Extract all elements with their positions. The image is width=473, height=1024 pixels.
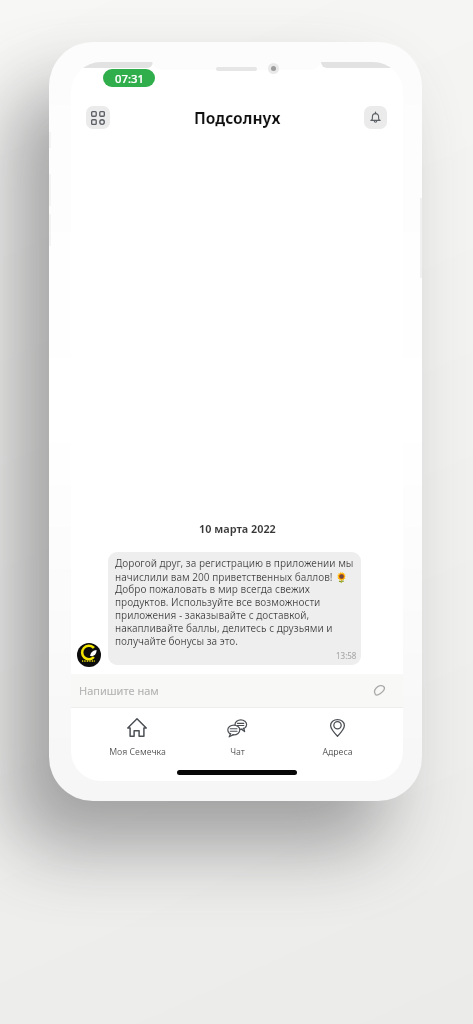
button[interactable]: Уведомления	[364, 106, 387, 129]
staticText: Подсолнух	[194, 107, 281, 128]
button[interactable]: Каталог	[86, 106, 110, 129]
staticText: 10 марта 2022	[199, 521, 276, 536]
button[interactable]: Чат	[187, 712, 287, 758]
staticText: Адреса	[322, 746, 353, 758]
button[interactable]: Прикрепить файл	[369, 681, 389, 701]
staticText: Моя Семечка	[109, 746, 166, 758]
button[interactable]: Напишите нам	[71, 674, 403, 707]
staticText: Напишите нам	[79, 683, 159, 698]
button[interactable]: Семечка	[77, 643, 101, 667]
staticText: Дорогой друг, за регистрацию в приложени…	[115, 556, 357, 648]
button[interactable]: Моя Семечка	[87, 712, 187, 758]
staticText: Чат	[230, 746, 245, 758]
staticText: 07:31	[115, 71, 144, 86]
button[interactable]: Адреса	[287, 712, 387, 758]
staticText: 13:58	[336, 650, 357, 661]
